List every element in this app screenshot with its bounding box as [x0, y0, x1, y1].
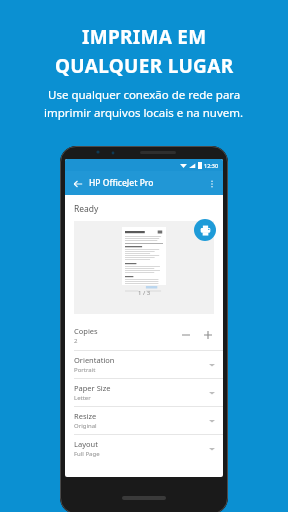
- staticText: Layout: [74, 439, 98, 449]
- staticText: Copies: [74, 326, 98, 336]
- staticText: 12:30: [204, 162, 219, 169]
- staticText: Portrait: [74, 366, 96, 374]
- button[interactable]: Back: [71, 177, 84, 190]
- staticText: HP OfficeJet Pro: [89, 177, 154, 189]
- staticText: IMPRIMA EM: [82, 24, 207, 50]
- staticText: Full Page: [74, 450, 100, 458]
- button[interactable]: Orientation: [65, 351, 223, 378]
- button[interactable]: Back: [65, 171, 223, 195]
- button[interactable]: Paper Size: [65, 379, 223, 406]
- staticText: 1 / 3: [138, 289, 151, 297]
- staticText: Original: [74, 422, 97, 430]
- staticText: Letter: [74, 394, 91, 402]
- staticText: Resize: [74, 411, 97, 421]
- button[interactable]: Decrease copies: [180, 329, 192, 341]
- button[interactable]: Copies: [65, 320, 223, 350]
- staticText: QUALQUER LUGAR: [55, 53, 234, 79]
- button[interactable]: More options: [205, 177, 218, 190]
- button[interactable]: Layout: [65, 435, 223, 462]
- staticText: Ready: [74, 203, 99, 215]
- button[interactable]: Print: [194, 219, 216, 241]
- staticText: Orientation: [74, 355, 115, 365]
- staticText: 2: [74, 337, 78, 345]
- staticText: Paper Size: [74, 383, 111, 393]
- staticText: imprimir arquivos locais e na nuvem.: [44, 105, 244, 121]
- staticText: Use qualquer conexão de rede para: [48, 87, 241, 103]
- button[interactable]: Increase copies: [202, 329, 214, 341]
- button[interactable]: Resize: [65, 407, 223, 434]
